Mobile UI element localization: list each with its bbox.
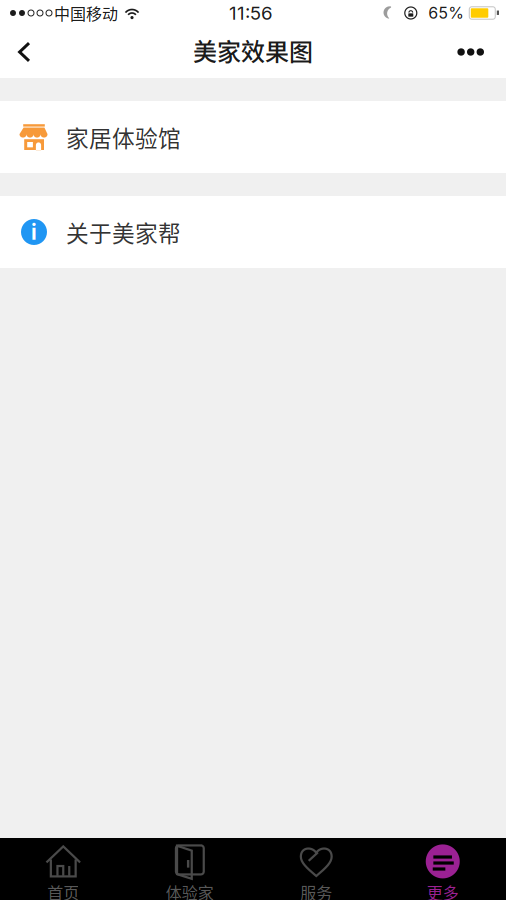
staticText: 11:56 (229, 2, 273, 24)
staticText: 中国移动 (54, 1, 118, 25)
staticText: 关于美家帮 (66, 216, 181, 248)
staticText: 首页 (47, 880, 79, 900)
staticText: 美家效果图 (193, 33, 313, 67)
button[interactable]: More options (439, 30, 506, 74)
button[interactable]: i (0, 196, 506, 268)
button[interactable]: Back (0, 28, 47, 75)
staticText: 65% (428, 3, 464, 23)
button[interactable]: 体验家 (126, 838, 253, 900)
staticText: 家居体验馆 (66, 121, 181, 153)
button[interactable]: 首页 (0, 838, 126, 900)
staticText: 服务 (300, 880, 332, 900)
button[interactable]: 更多 (379, 838, 506, 900)
button[interactable]: 家居体验馆 (0, 101, 506, 173)
button[interactable]: 服务 (253, 838, 379, 900)
staticText: i (31, 219, 37, 245)
staticText: 更多 (427, 880, 459, 900)
staticText: 体验家 (166, 880, 214, 900)
